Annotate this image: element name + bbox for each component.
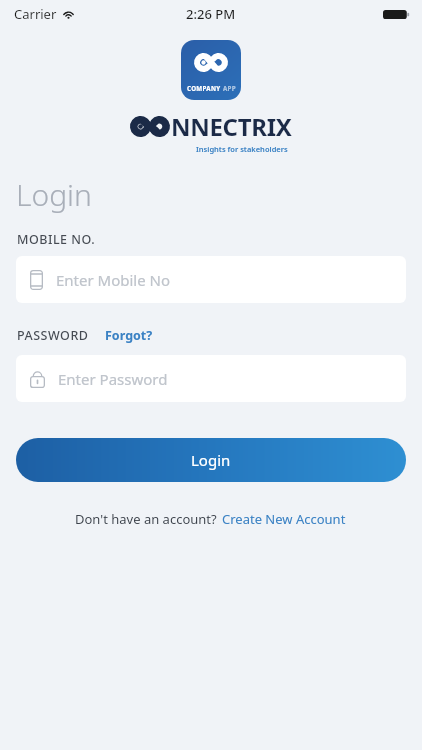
staticText: Login <box>16 174 92 215</box>
staticText: Don't have an account? <box>75 510 221 528</box>
staticText: NNECTRIX <box>171 110 292 143</box>
staticText: COMPANY <box>187 84 221 92</box>
button[interactable]: Mobile number input <box>16 256 406 303</box>
staticText: MOBILE NO. <box>17 231 96 248</box>
staticText: Login <box>191 450 231 470</box>
staticText: Enter Mobile No <box>56 270 171 290</box>
staticText: PASSWORD <box>17 327 89 344</box>
staticText: Create New Account <box>222 510 346 528</box>
button[interactable]: Forgot? <box>103 324 155 347</box>
staticText: APP <box>223 84 236 92</box>
button[interactable]: Create New Account <box>221 508 347 530</box>
button[interactable]: Password input <box>16 355 406 402</box>
staticText: 2:26 PM <box>186 5 236 23</box>
staticText: Forgot? <box>105 327 153 344</box>
button[interactable]: Login <box>16 438 406 482</box>
staticText: Enter Password <box>58 369 168 389</box>
staticText: Insights for stakeholders <box>196 144 288 154</box>
button[interactable]: COMPANY <box>181 40 241 100</box>
staticText: Carrier <box>14 5 57 23</box>
